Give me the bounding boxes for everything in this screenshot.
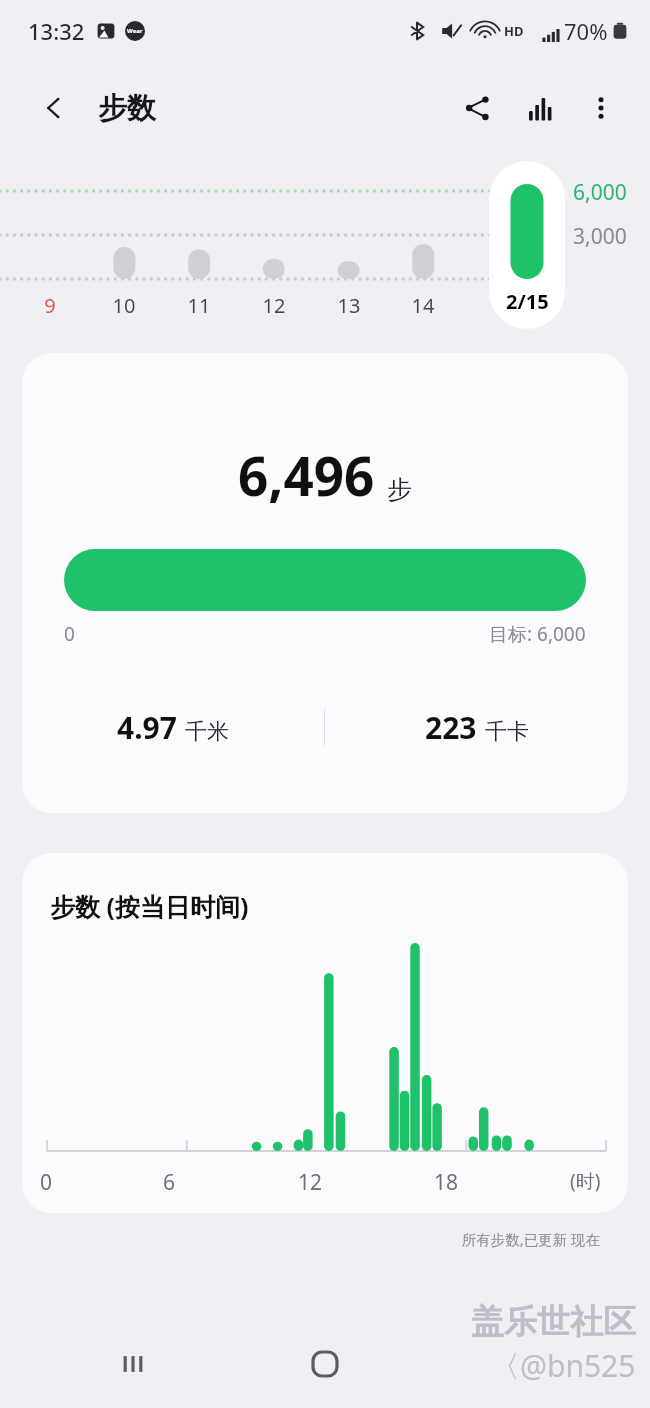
- button[interactable]: Recents: [105, 1336, 161, 1392]
- staticText: 2/15: [506, 288, 549, 315]
- staticText: 4.97: [117, 707, 177, 748]
- staticText: 0: [64, 621, 75, 647]
- staticText: 223: [425, 707, 477, 748]
- staticText: 千卡: [485, 718, 529, 746]
- button[interactable]: Charts: [514, 81, 568, 135]
- staticText: 9: [36, 292, 64, 319]
- staticText: 步: [387, 474, 412, 505]
- staticText: 〈@bn525: [490, 1345, 636, 1386]
- staticText: HD: [504, 22, 524, 40]
- staticText: Wear: [127, 27, 143, 35]
- button[interactable]: 6,496: [22, 353, 628, 813]
- staticText: 步数: [98, 90, 156, 127]
- staticText: 11: [185, 292, 213, 319]
- staticText: 10: [110, 292, 138, 319]
- staticText: 千米: [185, 718, 229, 746]
- staticText: (时): [570, 1168, 601, 1194]
- button[interactable]: 2/15: [489, 161, 565, 329]
- staticText: 6,000: [573, 178, 627, 207]
- staticText: 3,000: [573, 222, 627, 251]
- button[interactable]: 步数 (按当日时间): [22, 853, 628, 1213]
- staticText: 14: [409, 292, 437, 319]
- button[interactable]: Back: [34, 88, 74, 128]
- staticText: 12: [260, 292, 288, 319]
- staticText: 6: [163, 1168, 176, 1197]
- staticText: 13:32: [28, 16, 85, 46]
- staticText: 12: [298, 1168, 323, 1197]
- staticText: 步数 (按当日时间): [50, 889, 249, 923]
- button[interactable]: More options: [574, 81, 628, 135]
- staticText: 所有步数,已更新 现在: [0, 1229, 600, 1249]
- staticText: 0: [40, 1168, 53, 1197]
- staticText: 目标: 6,000: [489, 621, 586, 647]
- staticText: 70%: [564, 16, 608, 46]
- staticText: 18: [434, 1168, 459, 1197]
- staticText: 盖乐世社区: [471, 1301, 636, 1343]
- button[interactable]: Share: [450, 81, 504, 135]
- staticText: 13: [335, 292, 363, 319]
- staticText: 6,496: [238, 439, 375, 511]
- button[interactable]: Home: [297, 1336, 353, 1392]
